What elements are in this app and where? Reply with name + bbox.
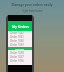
button[interactable]: Order 1041 [8, 35, 32, 39]
button[interactable]: Order 1042 [8, 31, 32, 35]
staticText: My Orders [12, 24, 29, 29]
button[interactable]: Order 1037 [8, 55, 32, 59]
staticText: Order 1036 [10, 59, 24, 63]
staticText: Reorder [15, 47, 25, 50]
staticText: Order 1041 [10, 35, 24, 39]
button[interactable]: Order 1039 [8, 43, 32, 47]
button[interactable]: Order 1038 [8, 51, 32, 55]
staticText: Order 1040 [10, 39, 24, 43]
staticText: Manage your orders easily [11, 3, 53, 7]
button[interactable]: My Orders [8, 21, 32, 31]
staticText: Order 1039 [10, 43, 24, 47]
staticText: Order 1037 [10, 55, 24, 59]
button[interactable]: Order 1040 [8, 39, 32, 43]
staticText: right from home [22, 9, 43, 13]
staticText: Order 1042 [10, 31, 24, 35]
staticText: Order 1038 [10, 51, 24, 55]
button[interactable]: Reorder [8, 47, 32, 50]
button[interactable]: Order 1036 [8, 59, 32, 63]
